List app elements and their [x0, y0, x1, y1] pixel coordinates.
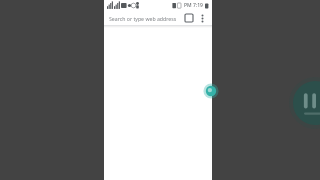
button[interactable]: Switch tabs [182, 11, 196, 25]
staticText: Search or type web address [109, 15, 177, 22]
button[interactable]: More options [196, 12, 209, 25]
staticText: PM 7:19 [184, 2, 203, 9]
button[interactable]: Search or type web address [109, 13, 182, 24]
